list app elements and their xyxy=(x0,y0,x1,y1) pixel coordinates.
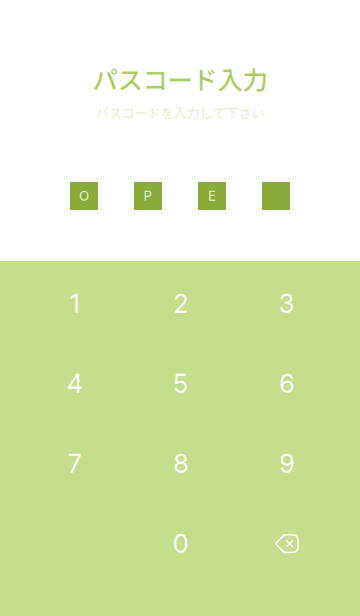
staticText: パスコード入力 xyxy=(92,60,267,97)
button[interactable]: Delete xyxy=(234,504,340,584)
staticText: パスコードを入力して下さい xyxy=(95,103,264,122)
staticText: 8 xyxy=(173,448,188,479)
button[interactable]: 7 xyxy=(22,424,128,504)
staticText: 7 xyxy=(68,448,82,479)
button[interactable]: 6 xyxy=(234,344,340,424)
staticText: 4 xyxy=(67,368,83,399)
button[interactable]: 8 xyxy=(128,424,234,504)
staticText: 5 xyxy=(173,368,188,399)
button[interactable]: 3 xyxy=(234,264,340,344)
button[interactable]: 0 xyxy=(128,504,234,584)
staticText: 3 xyxy=(279,288,295,319)
button[interactable]: 2 xyxy=(128,264,234,344)
button[interactable]: 4 xyxy=(22,344,128,424)
staticText: O xyxy=(79,188,89,204)
staticText: 1 xyxy=(70,288,80,319)
staticText: P xyxy=(143,188,152,204)
button[interactable]: 9 xyxy=(234,424,340,504)
staticText: 0 xyxy=(173,528,189,559)
staticText: 9 xyxy=(279,448,294,479)
button[interactable]: 1 xyxy=(22,264,128,344)
staticText: E xyxy=(208,188,216,204)
staticText: 2 xyxy=(173,288,188,319)
staticText: 6 xyxy=(279,368,294,399)
button[interactable]: 5 xyxy=(128,344,234,424)
